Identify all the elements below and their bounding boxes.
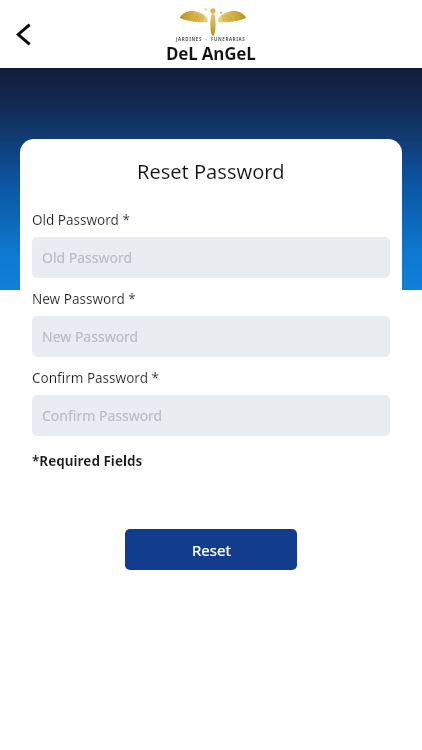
staticText: Old Password [42,248,133,267]
button[interactable]: Old Password [32,237,390,278]
staticText: DeL AnGeL [166,42,256,65]
staticText: New Password * [32,290,136,308]
staticText: Reset [192,540,231,560]
staticText: *Required Fields [32,452,143,470]
staticText: Confirm Password [42,406,163,425]
staticText: New Password [42,327,139,346]
button[interactable]: Back [0,11,46,57]
staticText: JARDINES · FUNERARIAS [176,36,246,42]
staticText: Old Password * [32,211,130,229]
staticText: Confirm Password * [32,369,159,387]
button[interactable]: Confirm Password [32,395,390,436]
button[interactable]: New Password [32,316,390,357]
staticText: Reset Password [137,158,285,185]
button[interactable]: Reset [125,529,297,570]
